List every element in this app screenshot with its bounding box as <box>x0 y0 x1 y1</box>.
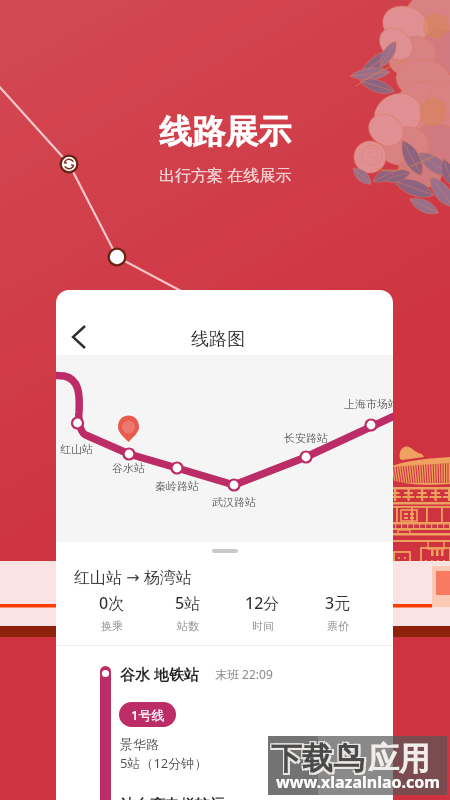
staticText: 下载鸟 <box>273 741 366 780</box>
staticText: 线路展示 <box>159 111 291 153</box>
staticText: 景华路 <box>120 736 159 752</box>
staticText: 末班 22:09 <box>215 666 273 682</box>
staticText: 下载鸟 <box>270 741 363 780</box>
staticText: 下载鸟 <box>270 738 363 777</box>
button[interactable]: 1号线 <box>119 702 176 727</box>
button[interactable]: 谷水 地铁站 <box>56 646 393 800</box>
staticText: 3元 <box>325 592 351 614</box>
staticText: 5站（12分钟） <box>120 754 208 772</box>
staticText: 武汉路站 <box>212 495 256 509</box>
staticText: 长安路站 <box>284 431 328 445</box>
staticText: 谷水 地铁站 <box>120 664 199 684</box>
staticText: www.xlazalnlao.com <box>276 771 440 793</box>
staticText: 上海市场站 <box>344 397 393 411</box>
staticText: 0次 <box>99 592 125 614</box>
staticText: 1号线 <box>131 706 165 724</box>
button[interactable]: Back <box>57 305 101 349</box>
staticText: 秦岭路站 <box>155 479 199 493</box>
staticText: 站数 <box>177 619 199 633</box>
staticText: 出行方案 在线展示 <box>159 164 292 186</box>
staticText: 站台离电梯较远 <box>120 796 225 800</box>
staticText: 换乘 <box>101 619 123 633</box>
staticText: 红山站 → 杨湾站 <box>74 566 192 588</box>
staticText: 线路图 <box>191 328 245 351</box>
staticText: 5站 <box>175 592 201 614</box>
staticText: 票价 <box>327 619 349 633</box>
staticText: 下载鸟 <box>273 738 366 777</box>
staticText: 时间 <box>252 619 274 633</box>
staticText: 下载鸟 <box>271 739 364 778</box>
staticText: 红山站 <box>60 442 93 456</box>
staticText: 谷水站 <box>112 461 145 475</box>
staticText: 12分 <box>245 592 280 614</box>
staticText: 应用 <box>368 739 430 778</box>
